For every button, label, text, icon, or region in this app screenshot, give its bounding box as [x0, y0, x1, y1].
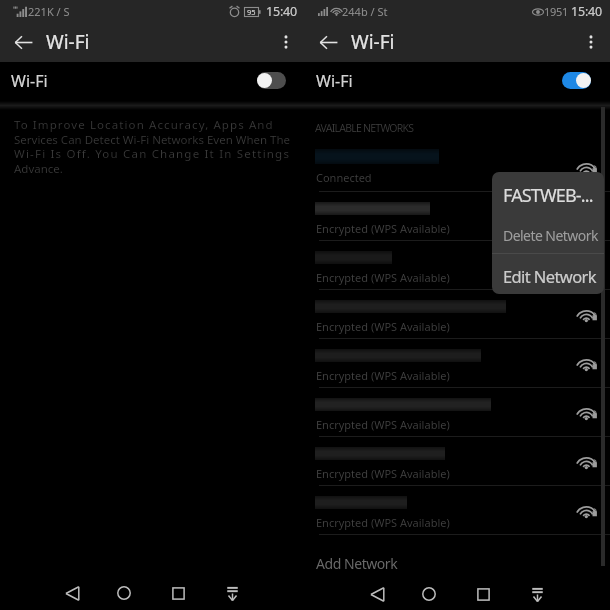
button[interactable]: Encrypted (WPS Available) [305, 241, 610, 290]
staticText: Connected [316, 170, 372, 185]
button[interactable] [492, 217, 604, 253]
staticText: Services Can Detect Wi-Fi Networks Even … [14, 132, 291, 148]
staticText: Edit Network [503, 265, 597, 287]
button[interactable] [492, 253, 604, 294]
staticText: Encrypted (WPS Available) [316, 221, 450, 236]
button[interactable]: Hide keyboard [521, 578, 553, 610]
button[interactable]: Home [413, 578, 445, 610]
staticText: 95 [247, 7, 256, 17]
button[interactable] [492, 172, 604, 217]
button[interactable]: Back [56, 577, 88, 609]
staticText: 221K / S [28, 4, 70, 19]
button[interactable]: Recents [467, 578, 499, 610]
button[interactable]: Navigate up [8, 27, 38, 57]
button[interactable]: Connected [305, 143, 610, 192]
staticText: Wi-Fi [11, 70, 48, 92]
button[interactable]: Encrypted (WPS Available) [305, 437, 610, 486]
button[interactable]: More options [272, 28, 300, 56]
staticText: 15:40 [571, 3, 602, 20]
staticText: To Improve Location Accuracy, Apps And [14, 117, 274, 133]
staticText: Wi-Fi [351, 29, 395, 55]
staticText: 1951 [544, 4, 568, 19]
button[interactable]: Hide keyboard [216, 577, 248, 609]
staticText: Encrypted (WPS Available) [316, 319, 450, 334]
staticText: 244b / St [342, 4, 388, 19]
button[interactable]: Encrypted (WPS Available) [305, 192, 610, 241]
staticText: 15:40 [266, 3, 297, 20]
button[interactable]: Wi-Fi [305, 62, 610, 101]
staticText: Encrypted (WPS Available) [316, 270, 450, 285]
staticText: Advance. [14, 161, 63, 177]
button[interactable]: Back [361, 578, 393, 610]
button[interactable]: Navigate up [313, 27, 343, 57]
button[interactable]: Encrypted (WPS Available) [305, 486, 610, 535]
button[interactable]: Encrypted (WPS Available) [305, 339, 610, 388]
staticText: Wi-Fi [46, 29, 90, 55]
button[interactable]: Recents [162, 577, 194, 609]
staticText: Wi-Fi [316, 70, 353, 92]
staticText: Delete Network [503, 226, 598, 245]
staticText: Encrypted (WPS Available) [316, 515, 450, 530]
button[interactable]: Wi-Fi [0, 62, 305, 101]
button[interactable]: Encrypted (WPS Available) [305, 290, 610, 339]
button[interactable]: Home [108, 577, 140, 609]
button[interactable]: Encrypted (WPS Available) [305, 388, 610, 437]
staticText: Encrypted (WPS Available) [316, 368, 450, 383]
staticText: Encrypted (WPS Available) [316, 466, 450, 481]
staticText: FASTWEB-... [503, 183, 593, 208]
button[interactable]: Add Network [305, 535, 610, 576]
staticText: Encrypted (WPS Available) [316, 417, 450, 432]
button[interactable]: More options [577, 28, 605, 56]
staticText: Add Network [316, 554, 398, 573]
staticText: Wi-Fi Is Off. You Can Change It In Setti… [14, 146, 291, 162]
staticText: AVAILABLE NETWORKS [315, 121, 414, 135]
